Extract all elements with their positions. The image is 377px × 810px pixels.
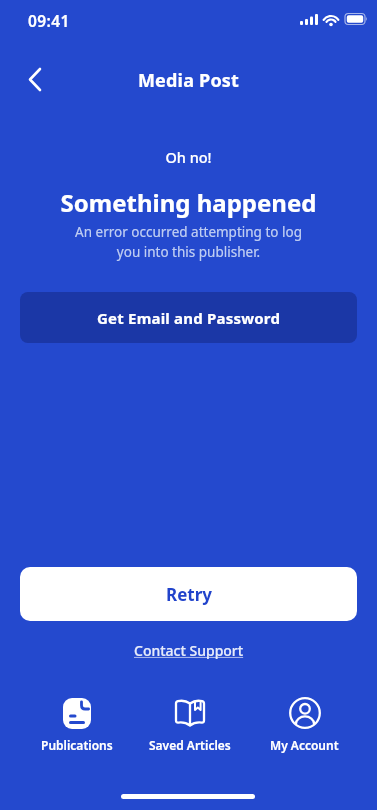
button[interactable]: Retry: [20, 567, 357, 621]
button[interactable]: Contact Support: [134, 641, 244, 660]
staticText: 09:41: [28, 10, 70, 31]
button[interactable]: Saved Articles: [149, 697, 231, 753]
staticText: My Account: [270, 737, 339, 753]
staticText: Publications: [41, 737, 113, 753]
button[interactable]: Get Email and Password: [20, 292, 357, 343]
staticText: Media Post: [0, 68, 377, 93]
button[interactable]: My Account: [270, 697, 339, 753]
staticText: Get Email and Password: [97, 308, 281, 328]
staticText: Something happened: [0, 186, 377, 219]
staticText: Saved Articles: [149, 737, 231, 753]
staticText: Retry: [166, 583, 212, 606]
staticText: Oh no!: [0, 147, 377, 167]
button[interactable]: Publications: [41, 697, 113, 753]
staticText: An error occurred attempting to log you …: [0, 223, 377, 261]
button[interactable]: [18, 62, 54, 98]
